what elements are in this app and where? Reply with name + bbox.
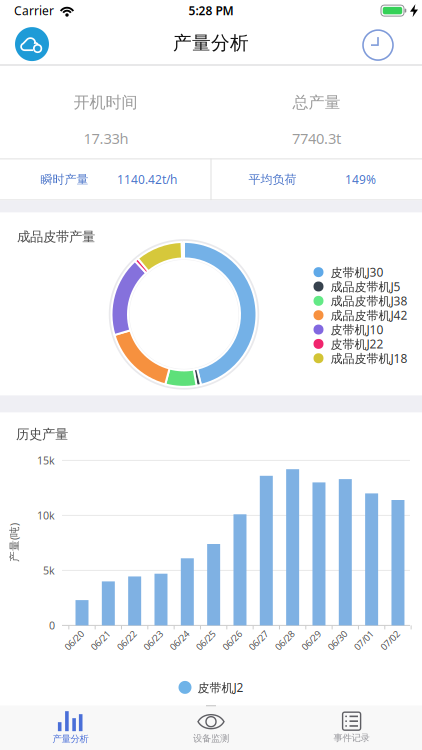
- button[interactable]: 历史记录: [361, 28, 395, 62]
- staticText: 17.33h: [83, 129, 128, 148]
- staticText: 06/28: [273, 634, 296, 647]
- staticText: 皮带机J22: [330, 336, 383, 352]
- staticText: 07/02: [378, 634, 401, 647]
- staticText: 成品皮带产量: [17, 229, 95, 245]
- staticText: 06/24: [168, 634, 191, 647]
- staticText: 06/23: [141, 634, 164, 647]
- staticText: 06/30: [326, 634, 349, 647]
- staticText: 0: [49, 618, 55, 632]
- button[interactable]: 平均负荷: [211, 158, 422, 200]
- staticText: 产量分析: [173, 32, 249, 54]
- staticText: 成品皮带机J38: [330, 293, 407, 309]
- staticText: 成品皮带机J5: [330, 278, 400, 294]
- button[interactable]: 设备监测: [141, 705, 281, 750]
- staticText: 成品皮带机J42: [330, 307, 407, 323]
- staticText: 皮带机J2: [197, 679, 243, 695]
- staticText: 成品皮带机J18: [330, 350, 407, 366]
- staticText: 07/01: [352, 634, 375, 647]
- staticText: 皮带机J30: [330, 264, 383, 280]
- staticText: 瞬时产量: [40, 172, 88, 187]
- staticText: 7740.3t: [292, 129, 341, 148]
- staticText: 5:28 PM: [188, 3, 233, 18]
- staticText: 皮带机J10: [330, 322, 383, 337]
- button[interactable]: 产量分析: [0, 705, 141, 750]
- staticText: 06/20: [62, 634, 85, 647]
- staticText: 产量分析: [52, 733, 88, 745]
- staticText: 06/21: [89, 634, 112, 647]
- staticText: 10k: [37, 508, 55, 522]
- staticText: 06/25: [194, 634, 217, 647]
- staticText: 06/26: [220, 634, 243, 647]
- staticText: 产量(吨): [0, 535, 33, 549]
- staticText: 06/22: [115, 634, 138, 647]
- staticText: 历史产量: [16, 426, 68, 443]
- staticText: Carrier: [14, 3, 54, 18]
- staticText: 设备监测: [193, 733, 229, 744]
- staticText: 5k: [43, 563, 55, 577]
- button[interactable]: 事件记录: [281, 705, 422, 750]
- staticText: 开机时间: [73, 93, 137, 112]
- staticText: 15k: [37, 453, 55, 467]
- staticText: 1140.42t/h: [117, 171, 177, 187]
- button[interactable]: 云服务: [15, 27, 49, 61]
- staticText: 06/27: [247, 634, 270, 647]
- button[interactable]: 瞬时产量: [0, 158, 211, 200]
- staticText: 平均负荷: [248, 172, 296, 187]
- staticText: 149%: [345, 171, 376, 187]
- staticText: 事件记录: [334, 732, 370, 744]
- staticText: 总产量: [292, 93, 340, 112]
- staticText: 06/29: [299, 634, 322, 647]
